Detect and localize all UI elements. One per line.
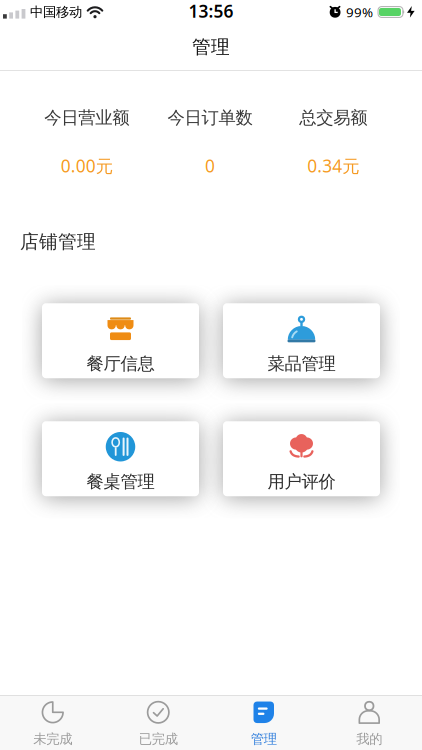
staticText: 0.34元 — [307, 154, 359, 177]
button[interactable]: 餐厅信息 — [42, 303, 199, 378]
staticText: 管理 — [192, 35, 230, 58]
button[interactable]: 管理 — [211, 701, 316, 747]
staticText: 餐厅信息 — [86, 353, 154, 374]
button[interactable]: 餐桌管理 — [42, 421, 199, 496]
button[interactable]: 已完成 — [105, 701, 211, 747]
staticText: 餐桌管理 — [86, 471, 154, 492]
staticText: 管理 — [251, 731, 277, 747]
staticText: 0 — [205, 154, 215, 177]
button[interactable]: 菜品管理 — [223, 303, 380, 378]
button[interactable]: 我的 — [316, 701, 422, 747]
staticText: 13:56 — [188, 0, 233, 22]
staticText: 0.00元 — [61, 154, 113, 177]
staticText: 菜品管理 — [267, 353, 335, 374]
staticText: 已完成 — [139, 731, 178, 747]
staticText: 中国移动 — [30, 4, 82, 20]
staticText: 99% — [346, 3, 373, 21]
staticText: 今日营业额 — [44, 107, 129, 128]
staticText: 店铺管理 — [20, 230, 96, 253]
staticText: 我的 — [356, 731, 382, 747]
button[interactable]: 未完成 — [0, 701, 105, 747]
staticText: 总交易额 — [299, 107, 367, 128]
staticText: 未完成 — [33, 731, 72, 747]
button[interactable]: 用户评价 — [223, 421, 380, 496]
staticText: 用户评价 — [267, 471, 335, 492]
staticText: 今日订单数 — [167, 107, 252, 128]
